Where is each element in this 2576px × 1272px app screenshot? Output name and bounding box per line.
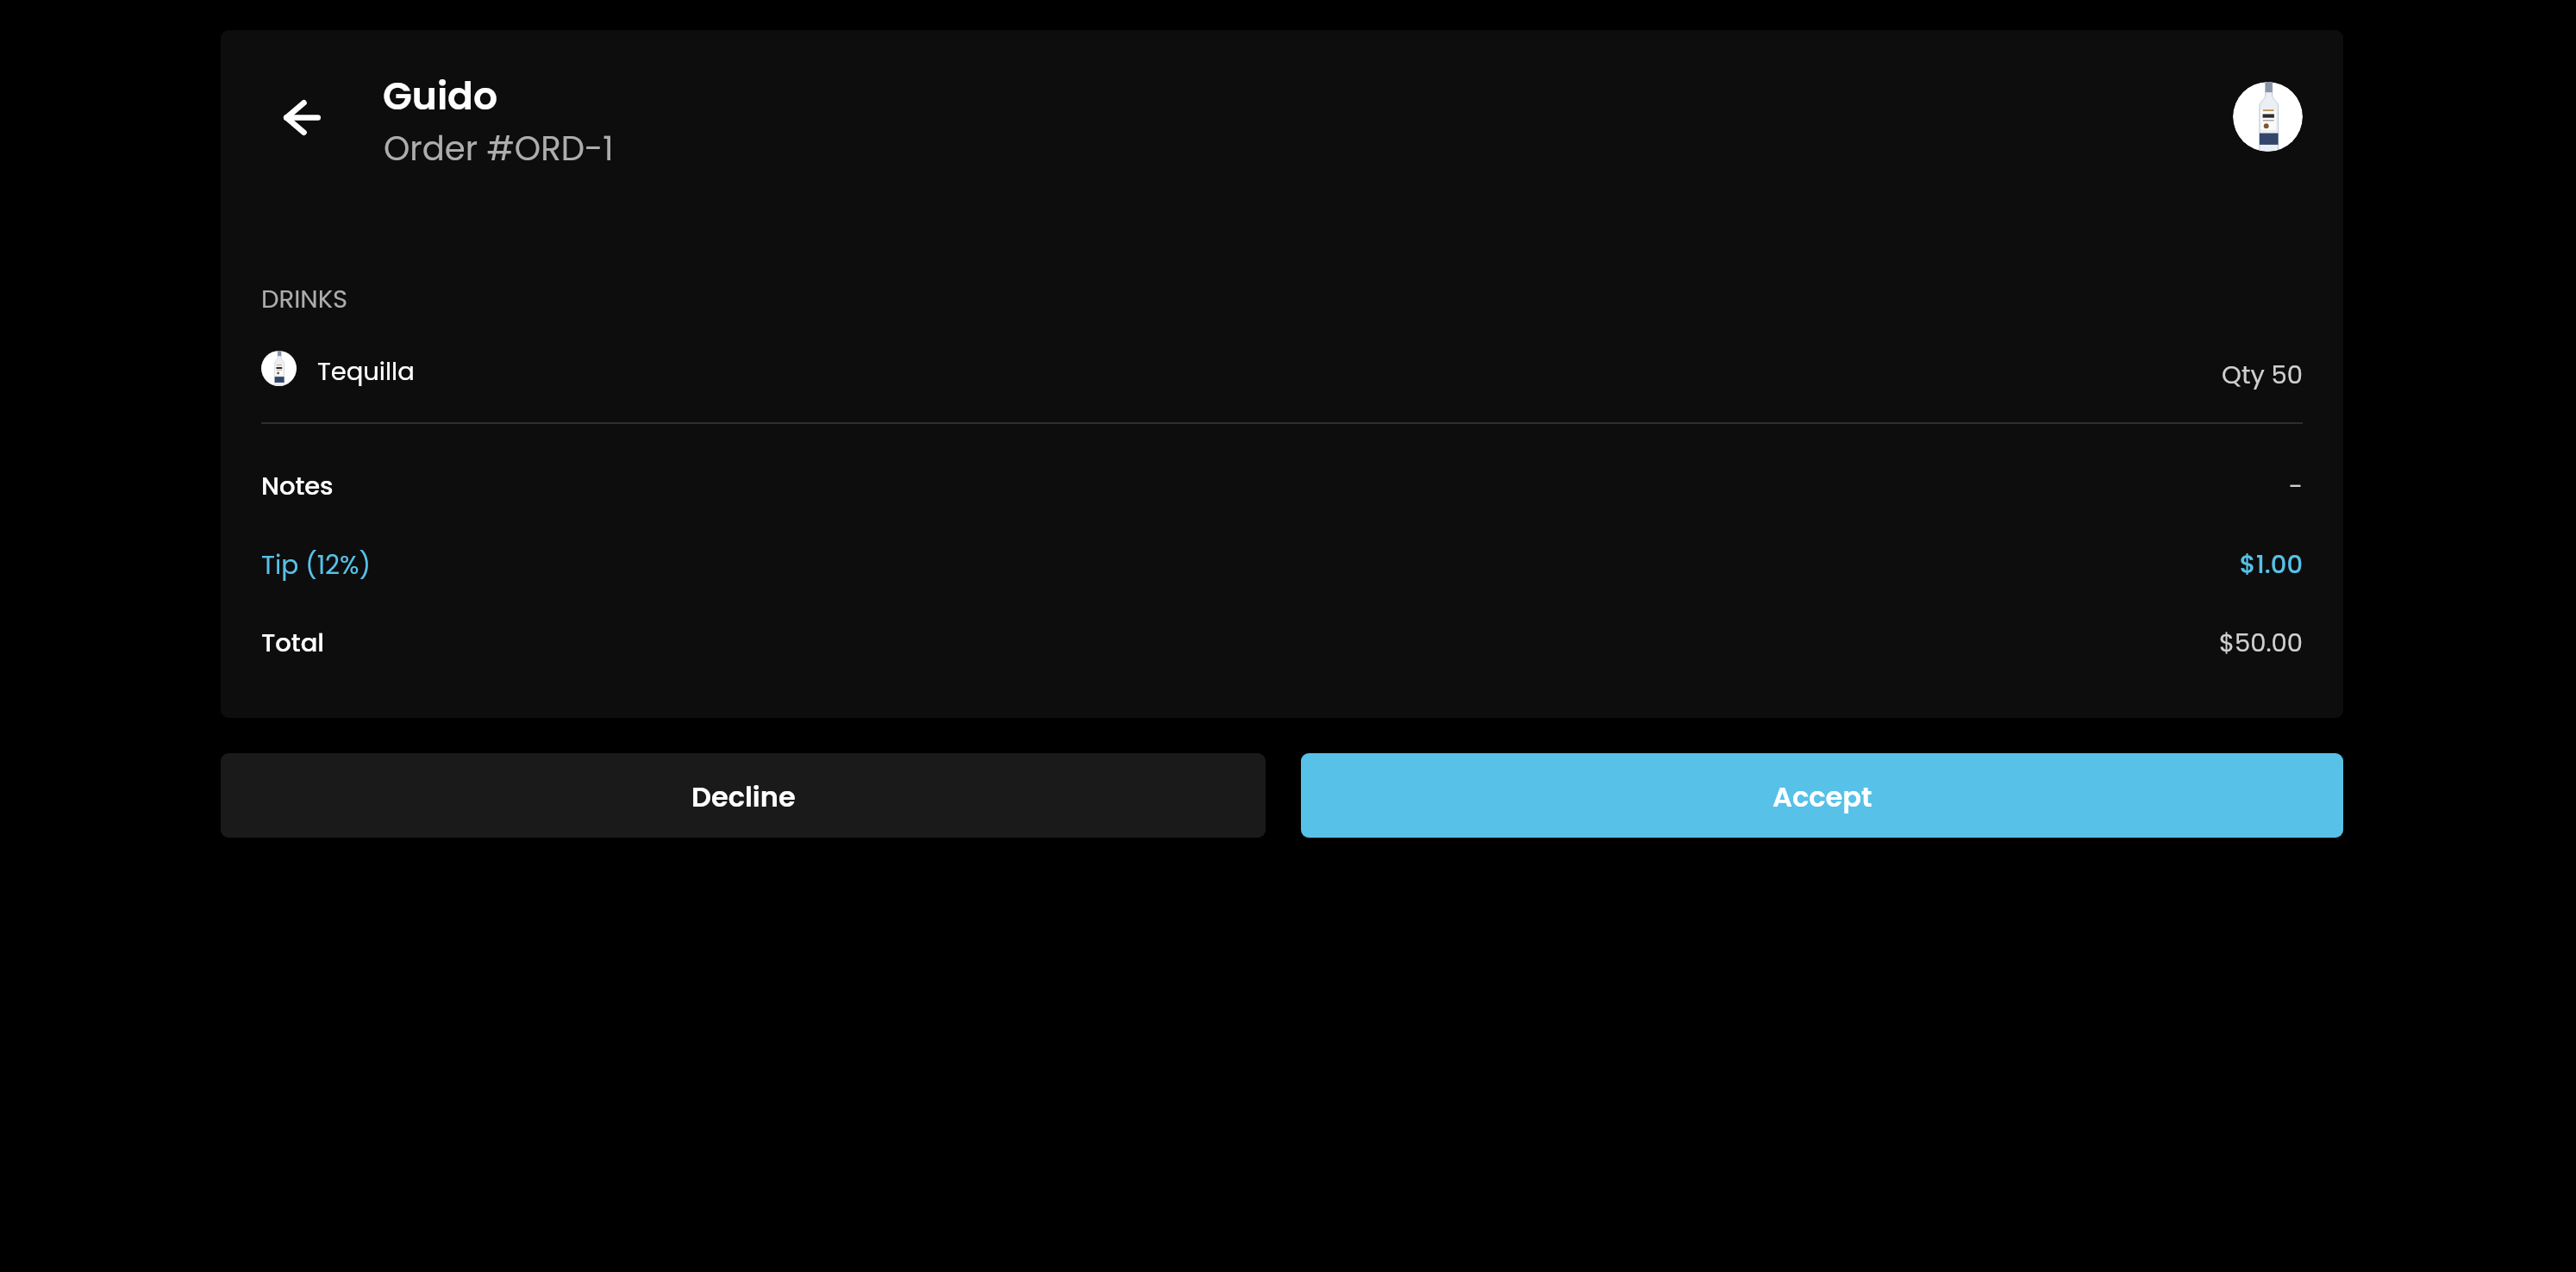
staticText: Qty 50: [1985, 358, 2303, 393]
staticText: Order #ORD-1: [384, 125, 614, 171]
staticText: Decline: [691, 777, 796, 816]
button[interactable]: Accept: [1301, 753, 2343, 838]
staticText: $1.00: [1985, 547, 2303, 583]
staticText: -: [1985, 469, 2303, 504]
button[interactable]: Decline: [221, 753, 1266, 838]
staticText: Accept: [1773, 777, 1873, 816]
staticText: Guido: [383, 70, 498, 123]
staticText: DRINKS: [261, 282, 348, 317]
staticText: Total: [261, 626, 324, 661]
button[interactable]: Tequilla: [261, 345, 2303, 393]
staticText: $50.00: [1985, 626, 2303, 661]
staticText: Tequilla: [317, 354, 415, 390]
button[interactable]: Back: [274, 90, 330, 145]
button[interactable]: Tequilla bottle, open profile: [2233, 82, 2303, 152]
staticText: Notes: [261, 469, 334, 504]
staticText: Tip (12%): [261, 547, 372, 583]
button[interactable]: Tip (12%): [261, 547, 2303, 592]
